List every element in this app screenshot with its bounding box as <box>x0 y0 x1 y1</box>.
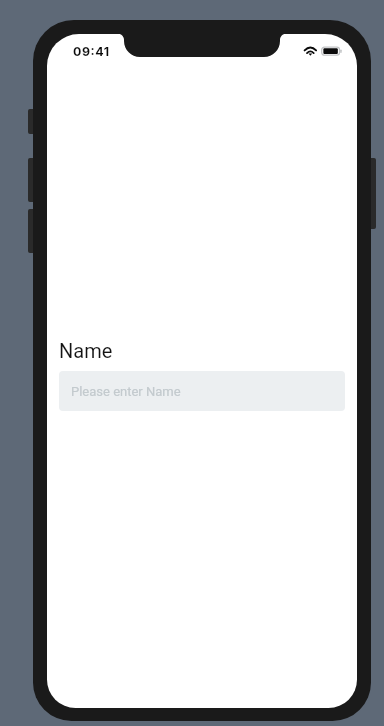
button[interactable]: Volume down <box>28 209 36 253</box>
staticText: Please enter Name <box>71 384 181 399</box>
button[interactable]: Ringer switch <box>28 109 36 134</box>
button[interactable]: Power <box>366 158 376 229</box>
staticText: Name <box>59 339 113 362</box>
button[interactable]: Please enter Name <box>59 371 345 411</box>
staticText: 09:41 <box>73 44 110 59</box>
button[interactable]: Volume up <box>28 158 36 202</box>
other: Wi-Fi and battery status <box>303 46 349 58</box>
